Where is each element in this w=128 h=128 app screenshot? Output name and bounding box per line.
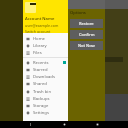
button[interactable]: Restore [70, 19, 103, 28]
staticText: Not Now [78, 43, 95, 48]
staticText: Trash bin [33, 89, 66, 95]
button[interactable]: Home [61, 121, 68, 128]
staticText: Settings [33, 110, 66, 116]
button[interactable]: Recents [94, 121, 101, 128]
button[interactable]: Confirm [70, 30, 103, 39]
staticText: Backups [33, 96, 66, 102]
button[interactable]: Downloads [23, 73, 68, 80]
staticText: Shared [33, 81, 66, 87]
button[interactable]: Back [27, 121, 34, 128]
staticText: user@example.com [25, 23, 59, 28]
button[interactable]: Account Name [23, 0, 68, 33]
button[interactable]: Settings [23, 109, 68, 116]
button[interactable]: Backups [23, 95, 68, 102]
button[interactable]: Recents [23, 59, 68, 66]
staticText: Switch account [25, 29, 51, 33]
staticText: Options [70, 10, 86, 16]
staticText: Confirm [79, 32, 95, 37]
button[interactable]: Starred [23, 66, 68, 73]
button[interactable]: Library [23, 42, 68, 49]
staticText: Restore [79, 21, 94, 26]
button[interactable]: Files [23, 49, 68, 56]
button[interactable]: Storage [23, 102, 68, 109]
button[interactable]: Trash bin [23, 88, 68, 95]
button[interactable]: Not Now [70, 41, 103, 50]
button[interactable]: Shared [23, 80, 68, 87]
staticText: Home [33, 36, 66, 42]
staticText: Files [33, 50, 66, 56]
staticText: Account Name [25, 16, 55, 22]
staticText: Storage [33, 103, 66, 109]
button[interactable]: Home [23, 35, 68, 42]
staticText: Downloads [33, 74, 66, 80]
staticText: Starred [33, 67, 66, 73]
staticText: Library [33, 43, 66, 49]
staticText: Recents [33, 60, 63, 66]
